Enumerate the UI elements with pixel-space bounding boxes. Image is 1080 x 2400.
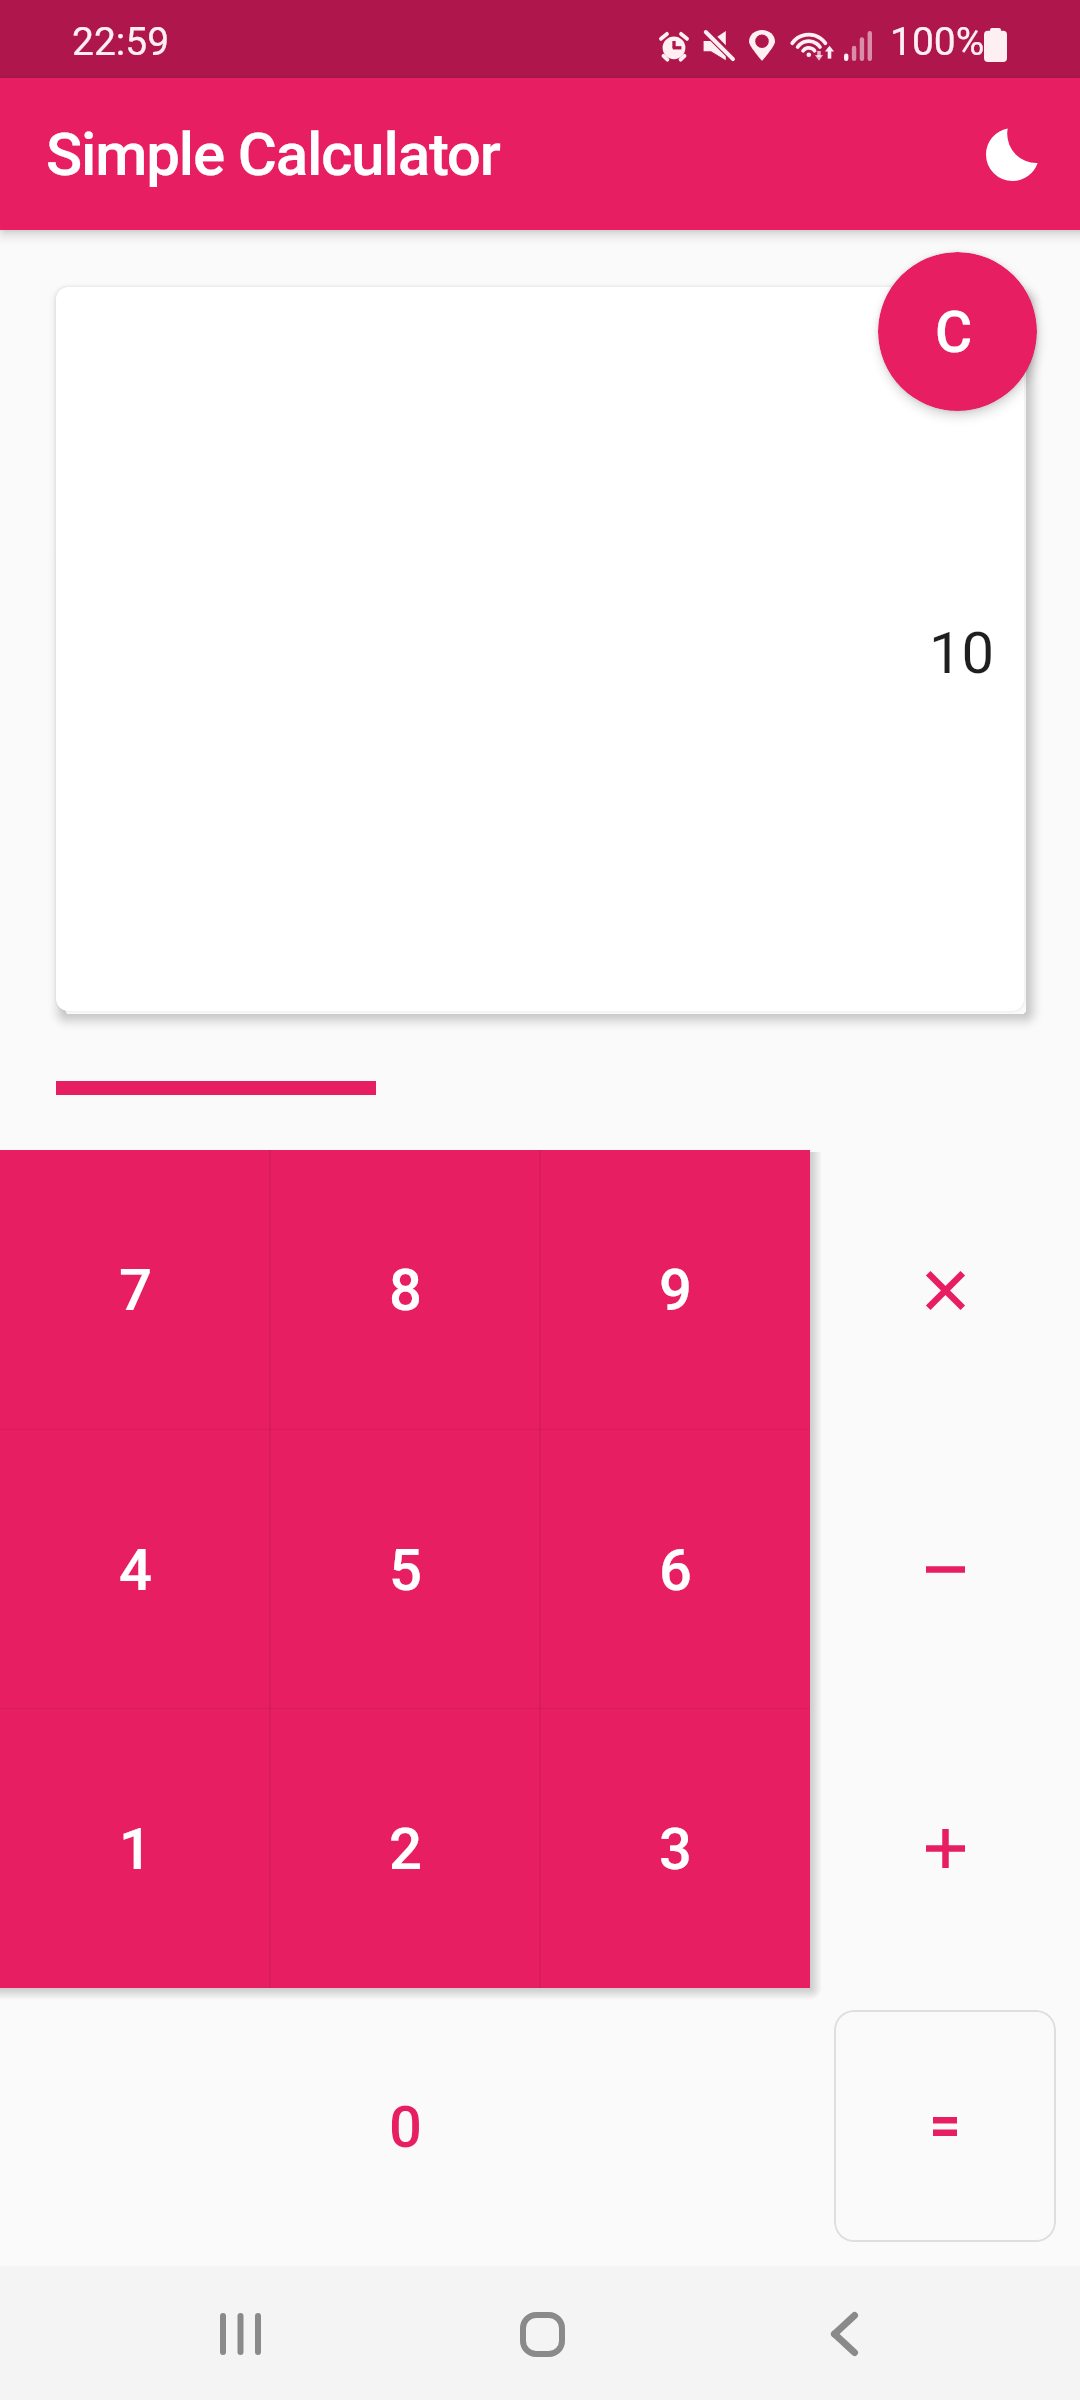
staticText: 100% bbox=[890, 19, 985, 65]
staticText: 10 bbox=[929, 619, 995, 687]
button[interactable]: Toggle dark mode bbox=[973, 115, 1051, 193]
button[interactable]: Multiply bbox=[810, 1150, 1080, 1430]
button[interactable]: Recents bbox=[185, 2279, 295, 2389]
button[interactable]: 2 bbox=[270, 1709, 540, 1988]
button[interactable]: 4 bbox=[0, 1430, 270, 1709]
button[interactable]: Subtract bbox=[810, 1430, 1080, 1709]
staticText: 1 bbox=[119, 1815, 152, 1883]
button[interactable]: 7 bbox=[0, 1150, 270, 1430]
button[interactable]: Back bbox=[789, 2279, 899, 2389]
button[interactable]: 1 bbox=[0, 1709, 270, 1988]
staticText: 0 bbox=[389, 2093, 422, 2161]
staticText: Simple Calculator bbox=[46, 119, 500, 189]
staticText: 9 bbox=[659, 1256, 692, 1324]
button[interactable]: C bbox=[878, 252, 1037, 411]
button[interactable]: 8 bbox=[270, 1150, 540, 1430]
button[interactable]: 9 bbox=[540, 1150, 810, 1430]
staticText: 8 bbox=[389, 1256, 422, 1324]
button[interactable]: 5 bbox=[270, 1430, 540, 1709]
button[interactable]: Add bbox=[810, 1709, 1080, 1988]
staticText: C bbox=[935, 299, 973, 366]
staticText: 2 bbox=[389, 1815, 422, 1883]
button[interactable]: Equals bbox=[834, 2010, 1056, 2242]
staticText: 6 bbox=[659, 1536, 692, 1604]
staticText: 5 bbox=[389, 1536, 422, 1604]
staticText: 22:59 bbox=[72, 19, 170, 65]
button[interactable]: 6 bbox=[540, 1430, 810, 1709]
staticText: 3 bbox=[659, 1815, 692, 1883]
staticText: 4 bbox=[119, 1536, 152, 1604]
button[interactable]: Home bbox=[487, 2279, 597, 2389]
button[interactable]: 0 bbox=[0, 1988, 810, 2266]
staticText: 7 bbox=[119, 1256, 152, 1324]
button[interactable]: 3 bbox=[540, 1709, 810, 1988]
